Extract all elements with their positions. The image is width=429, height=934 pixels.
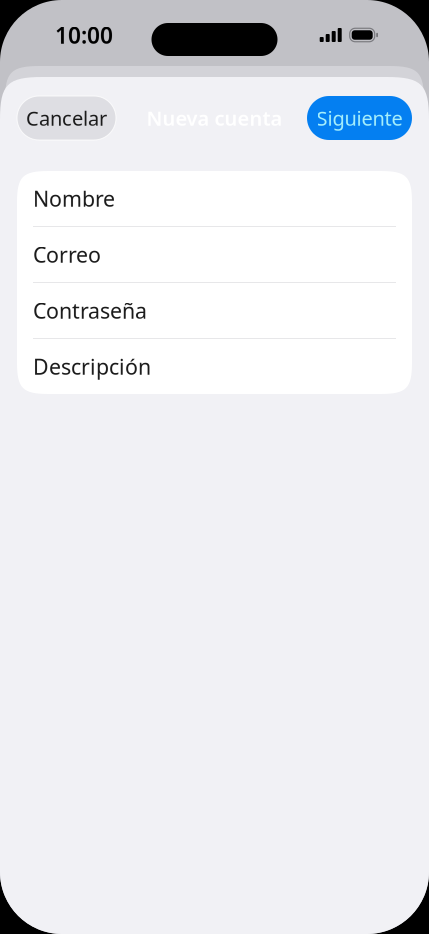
staticText: Descripción (33, 352, 151, 381)
button[interactable]: Nombre (17, 171, 412, 227)
button[interactable]: Descripción (17, 339, 412, 394)
button[interactable]: Siguiente (307, 96, 412, 140)
staticText: Siguiente (316, 105, 402, 131)
staticText: Contraseña (33, 296, 147, 325)
button[interactable]: Correo (17, 227, 412, 283)
staticText: Nombre (33, 184, 115, 213)
staticText: 10:00 (55, 20, 113, 50)
button[interactable]: Contraseña (17, 283, 412, 339)
staticText: Nueva cuenta (146, 105, 282, 131)
staticText: Cancelar (26, 105, 107, 131)
staticText: Correo (33, 240, 101, 269)
button[interactable]: Cancelar (17, 96, 116, 140)
